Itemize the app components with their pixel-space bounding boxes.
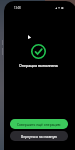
button[interactable]: Вернуться на главную [10, 131, 68, 141]
staticText: Вернуться на главную [21, 134, 58, 138]
staticText: Операция выполнена [4, 63, 73, 68]
button[interactable]: Совершить ещё операцию [10, 119, 68, 129]
staticText: 13:00 [14, 6, 21, 10]
staticText: Совершить ещё операцию [17, 122, 61, 126]
